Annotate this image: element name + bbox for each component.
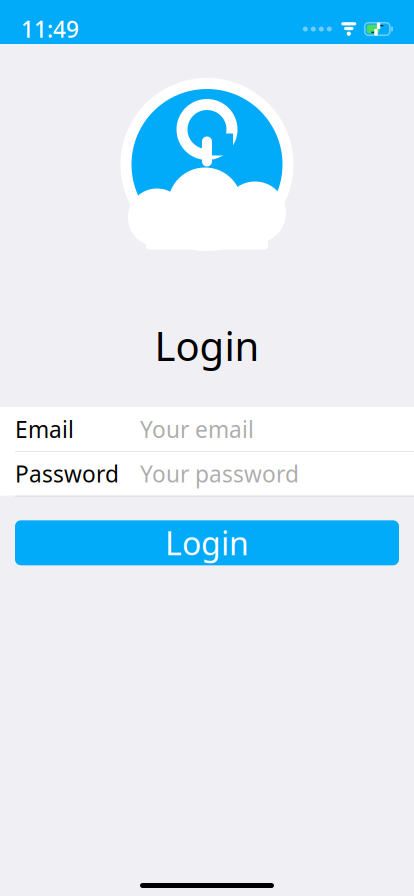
staticText: Password xyxy=(15,459,119,489)
staticText: Login xyxy=(165,522,249,564)
staticText: 11:49 xyxy=(21,14,79,44)
staticText: Your password xyxy=(140,459,299,489)
button[interactable]: Email xyxy=(0,407,414,451)
staticText: Login xyxy=(154,319,259,372)
button[interactable]: Password xyxy=(0,452,414,496)
button[interactable]: Login xyxy=(15,520,399,565)
staticText: Email xyxy=(15,414,74,444)
staticText: Your email xyxy=(140,414,254,444)
